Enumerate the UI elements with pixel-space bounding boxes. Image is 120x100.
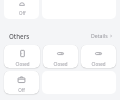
button[interactable]: Closed xyxy=(81,45,116,68)
staticText: Off xyxy=(18,87,25,93)
button[interactable]: Lamp xyxy=(4,0,39,19)
staticText: Off xyxy=(19,10,26,16)
staticText: Closed xyxy=(53,61,68,67)
button[interactable]: Closed xyxy=(43,45,78,68)
staticText: Closed xyxy=(15,61,30,67)
staticText: Others xyxy=(9,32,30,40)
staticText: Details xyxy=(91,32,108,39)
other: Lamp xyxy=(18,1,26,9)
button[interactable]: Details xyxy=(89,30,115,41)
staticText: Closed xyxy=(91,61,106,67)
button[interactable]: Closed xyxy=(4,45,40,68)
button[interactable]: Off xyxy=(4,71,39,94)
